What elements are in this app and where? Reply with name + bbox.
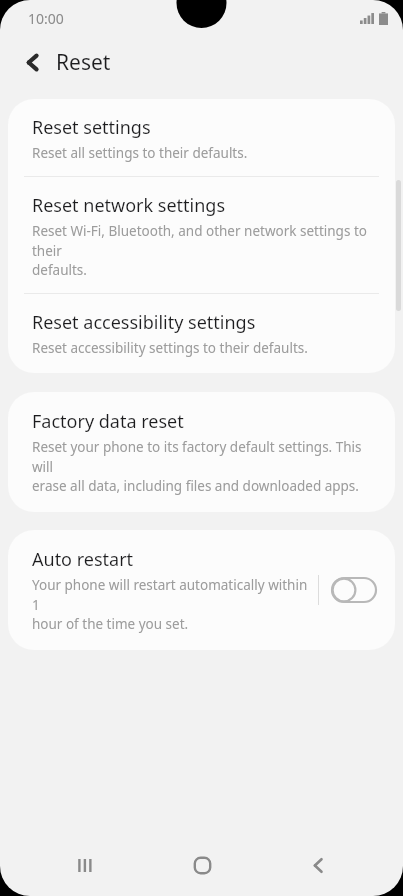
staticText: Reset network settings — [32, 193, 226, 218]
staticText: Your phone will restart automatically wi… — [32, 576, 308, 633]
button[interactable]: Reset accessibility settings — [8, 294, 395, 373]
staticText: Reset accessibility settings — [32, 310, 256, 335]
button[interactable]: Recent apps — [54, 834, 116, 896]
staticText: Reset accessibility settings to their de… — [32, 339, 308, 357]
button[interactable]: Back — [14, 43, 52, 81]
button[interactable]: Auto restart — [8, 530, 395, 650]
button[interactable]: Factory data reset — [8, 392, 395, 512]
staticText: Auto restart — [32, 547, 134, 572]
staticText: Reset settings — [32, 115, 151, 140]
button[interactable]: Reset settings — [8, 99, 395, 176]
staticText: Reset all settings to their defaults. — [32, 144, 248, 162]
button[interactable]: Back — [287, 834, 349, 896]
staticText: Reset — [56, 48, 111, 77]
button[interactable]: Reset network settings — [8, 177, 395, 293]
staticText: Factory data reset — [32, 409, 184, 434]
staticText: Reset Wi-Fi, Bluetooth, and other networ… — [32, 222, 375, 279]
staticText: Reset your phone to its factory default … — [32, 438, 375, 495]
button[interactable]: Home — [171, 834, 233, 896]
staticText: 10:00 — [28, 9, 64, 28]
button[interactable]: Auto restart toggle — [331, 577, 377, 603]
